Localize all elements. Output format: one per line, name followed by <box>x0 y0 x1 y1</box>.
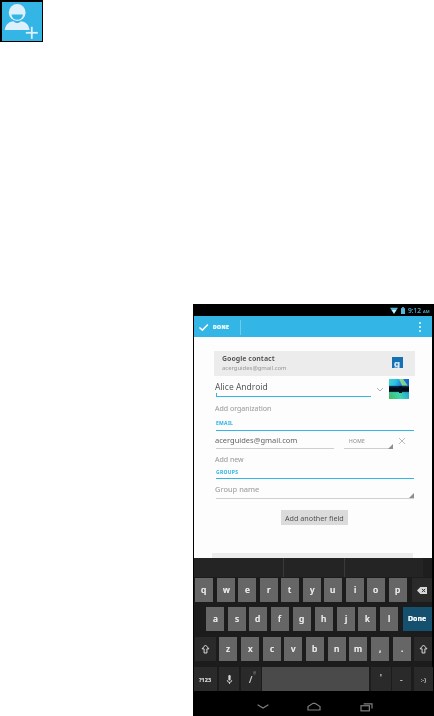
staticText: w <box>223 584 230 596</box>
button[interactable]: Dash <box>392 667 411 691</box>
button[interactable]: c <box>263 637 281 661</box>
staticText: Done <box>408 614 427 624</box>
button[interactable]: x <box>241 637 259 661</box>
staticText: p <box>395 584 401 596</box>
button[interactable]: Home <box>305 691 323 716</box>
staticText: z <box>226 643 231 655</box>
staticText: f <box>278 613 282 625</box>
button[interactable]: Voice input <box>219 667 239 691</box>
staticText: j <box>345 613 348 625</box>
button[interactable]: Back <box>254 691 272 716</box>
button[interactable]: Add contact <box>0 0 43 42</box>
button[interactable]: r <box>260 578 278 602</box>
button[interactable]: Google contact <box>214 351 415 376</box>
button[interactable]: Apostrophe <box>371 667 391 691</box>
button[interactable]: w <box>217 578 235 602</box>
button[interactable]: o <box>367 578 385 602</box>
button[interactable]: l <box>380 607 398 631</box>
button[interactable]: p <box>389 578 407 602</box>
staticText: 9:12 <box>408 306 422 315</box>
staticText: . <box>401 643 404 655</box>
staticText: y <box>310 584 315 596</box>
button[interactable]: h <box>315 607 333 631</box>
button[interactable]: i <box>346 578 364 602</box>
button[interactable]: Done <box>403 607 432 631</box>
button[interactable]: Symbols <box>194 667 217 691</box>
button[interactable]: s <box>228 607 246 631</box>
staticText: acerguides@gmail.com <box>215 435 298 445</box>
staticText: h <box>321 613 327 625</box>
staticText: ' <box>380 672 382 683</box>
button[interactable]: Recents <box>357 691 375 716</box>
button[interactable]: Emoji <box>414 667 433 691</box>
button[interactable]: DONE <box>198 322 230 333</box>
staticText: GROUPS <box>216 469 239 476</box>
staticText: Add organization <box>215 404 272 414</box>
button[interactable]: y <box>303 578 321 602</box>
staticText: AM <box>423 309 430 315</box>
staticText: DONE <box>213 324 230 331</box>
staticText: e <box>245 584 250 596</box>
staticText: n <box>334 643 340 655</box>
button[interactable]: Shift <box>195 637 216 661</box>
staticText: acerguides@gmail.com <box>222 364 287 372</box>
staticText: q <box>201 584 207 596</box>
staticText: g <box>394 357 401 368</box>
staticText: EMAIL <box>216 420 234 427</box>
button[interactable]: Contact photo <box>389 379 409 399</box>
staticText: a <box>213 613 218 625</box>
staticText: i <box>354 584 357 596</box>
staticText: m <box>354 643 363 655</box>
staticText: / <box>249 673 253 685</box>
button[interactable]: Shift <box>414 637 432 661</box>
staticText: HOME <box>349 438 366 445</box>
staticText: s <box>235 613 240 625</box>
staticText: c <box>270 643 275 655</box>
button[interactable]: More options <box>414 319 426 335</box>
staticText: x <box>248 643 253 655</box>
button[interactable]: , <box>371 637 389 661</box>
staticText: - <box>400 674 403 685</box>
button[interactable]: Slash <box>241 667 261 691</box>
staticText: Add new <box>215 455 244 465</box>
button[interactable]: u <box>324 578 342 602</box>
staticText: Google contact <box>222 354 275 364</box>
button[interactable]: t <box>281 578 299 602</box>
staticText: , <box>379 643 382 655</box>
staticText: Add another field <box>285 513 344 523</box>
staticText: d <box>255 613 261 625</box>
button[interactable]: b <box>306 637 324 661</box>
button[interactable]: j <box>337 607 355 631</box>
button[interactable]: Add another field <box>281 510 348 525</box>
button[interactable]: Backspace <box>412 578 432 602</box>
staticText: r <box>267 584 271 596</box>
button[interactable]: Remove email <box>397 436 407 446</box>
button[interactable]: z <box>219 637 237 661</box>
staticText: Group name <box>215 484 260 494</box>
button[interactable]: a <box>206 607 224 631</box>
button[interactable]: m <box>349 637 367 661</box>
staticText: ?123 <box>199 676 212 683</box>
staticText: b <box>312 643 318 655</box>
staticText: Alice Android <box>215 381 268 393</box>
staticText: :-) <box>421 676 426 683</box>
button[interactable]: v <box>284 637 302 661</box>
staticText: @ <box>253 670 257 675</box>
button[interactable]: f <box>271 607 289 631</box>
button[interactable]: d <box>249 607 267 631</box>
staticText: t <box>288 584 292 596</box>
staticText: l <box>388 613 391 625</box>
staticText: u <box>330 584 336 596</box>
button[interactable]: g <box>293 607 311 631</box>
button[interactable]: . <box>393 637 411 661</box>
staticText: o <box>373 584 379 596</box>
button[interactable]: k <box>358 607 376 631</box>
staticText: v <box>291 643 296 655</box>
button[interactable]: e <box>238 578 256 602</box>
button[interactable]: n <box>328 637 346 661</box>
staticText: k <box>365 613 370 625</box>
staticText: g <box>299 613 305 625</box>
button[interactable]: q <box>195 578 213 602</box>
